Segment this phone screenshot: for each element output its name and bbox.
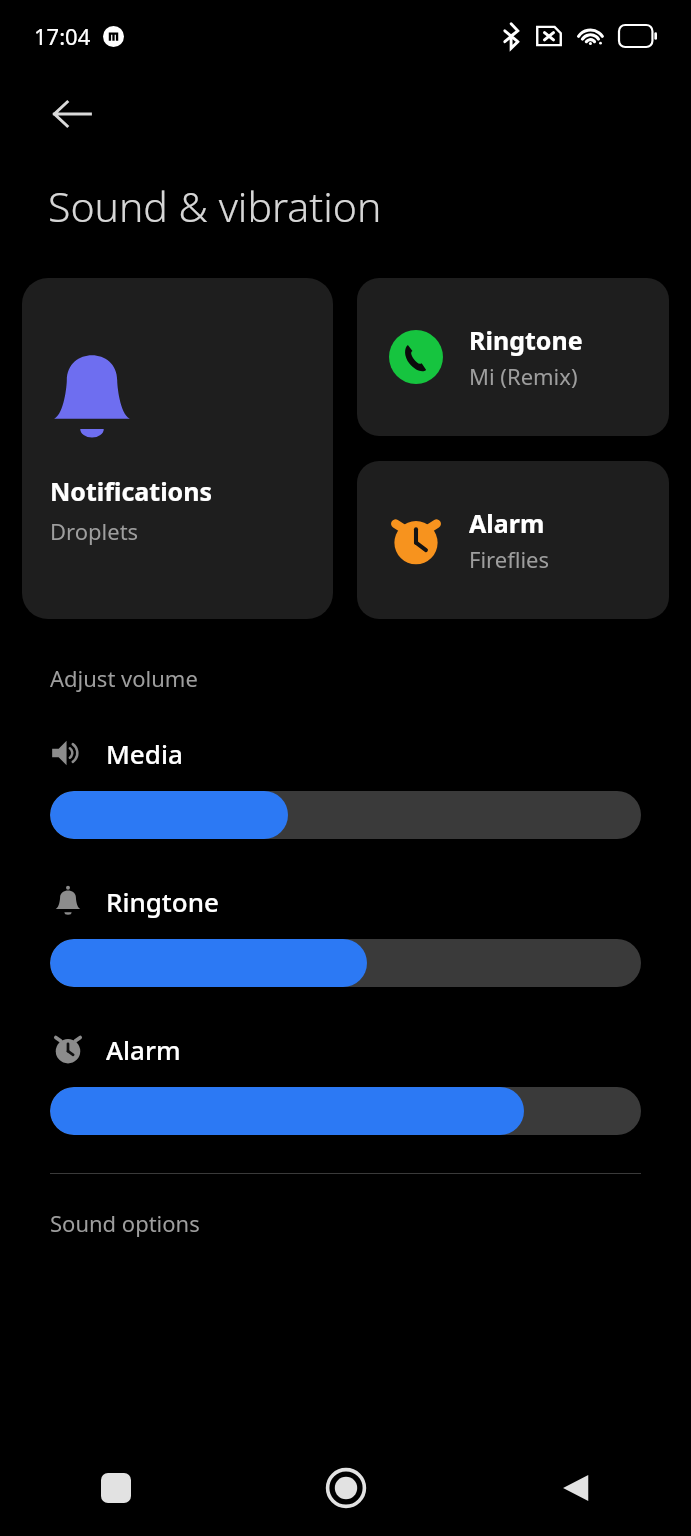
- staticText: Droplets: [50, 516, 139, 546]
- staticText: Mi (Remix): [469, 361, 578, 391]
- staticText: Ringtone: [469, 323, 583, 357]
- staticText: Sound & vibration: [48, 178, 382, 234]
- button[interactable]: Recent apps: [0, 1440, 231, 1536]
- button[interactable]: Back: [30, 72, 114, 156]
- staticText: Notifications: [50, 474, 213, 508]
- staticText: Adjust volume: [50, 663, 198, 693]
- button[interactable]: Ringtone: [0, 883, 691, 987]
- staticText: Alarm: [469, 506, 545, 540]
- button[interactable]: Notifications: [22, 278, 333, 619]
- staticText: Fireflies: [469, 544, 550, 574]
- staticText: Ringtone: [106, 884, 219, 919]
- button[interactable]: Ringtone: [357, 278, 669, 436]
- button[interactable]: Alarm: [357, 461, 669, 619]
- button[interactable]: Back: [461, 1440, 691, 1536]
- staticText: 17:04: [34, 21, 91, 51]
- button[interactable]: Alarm: [0, 1031, 691, 1135]
- button[interactable]: Home: [231, 1440, 461, 1536]
- staticText: Sound options: [50, 1208, 200, 1238]
- button[interactable]: Media: [0, 735, 691, 839]
- staticText: Media: [106, 736, 183, 771]
- staticText: Alarm: [106, 1032, 181, 1067]
